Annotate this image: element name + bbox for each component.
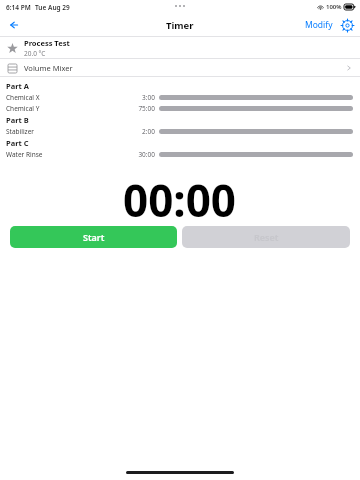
staticText: Modify (305, 19, 333, 31)
staticText: 100% (326, 3, 342, 11)
staticText: Chemical Y (6, 104, 40, 113)
staticText: 2:00 (120, 127, 155, 136)
staticText: Reset (254, 231, 279, 243)
button[interactable]: Chemical Y (0, 103, 360, 114)
staticText: Process Test (24, 38, 70, 48)
staticText: Stabilizer (6, 127, 34, 136)
staticText: Part A (6, 81, 29, 91)
staticText: Tue Aug 29 (35, 3, 70, 12)
staticText: 6:14 PM (6, 3, 31, 12)
staticText: Part C (6, 138, 29, 148)
staticText: 30:00 (120, 150, 155, 159)
staticText: 75:00 (120, 104, 155, 113)
button[interactable]: Process Test (0, 37, 360, 58)
button[interactable]: Chemical X (0, 92, 360, 103)
button[interactable]: Water Rinse (0, 149, 360, 160)
staticText: 00:00 (123, 170, 237, 218)
button[interactable]: Start (10, 226, 177, 248)
button[interactable]: Stabilizer (0, 126, 360, 137)
staticText: 3:00 (120, 93, 155, 102)
button[interactable]: Back (4, 15, 24, 35)
staticText: 20.0 °C (24, 49, 46, 58)
button[interactable]: Settings (340, 18, 354, 32)
staticText: Timer (166, 19, 194, 32)
staticText: Chemical X (6, 93, 40, 102)
staticText: Water Rinse (6, 150, 43, 159)
button[interactable]: Volume Mixer (0, 59, 360, 76)
button[interactable]: Modify (304, 17, 334, 33)
staticText: Volume Mixer (24, 63, 73, 73)
button[interactable]: Reset (182, 226, 350, 248)
staticText: Start (83, 231, 105, 243)
staticText: Part B (6, 115, 29, 125)
